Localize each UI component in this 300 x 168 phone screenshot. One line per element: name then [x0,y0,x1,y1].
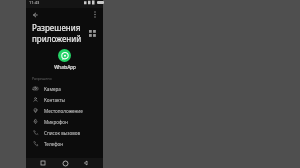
staticText: Список вызовов [44,130,81,136]
staticText: Местоположение [44,108,83,114]
button[interactable]: Recent apps [38,158,48,168]
button[interactable]: Grid view [86,27,98,39]
staticText: 11:43 [29,0,40,5]
staticText: Микрофон [44,119,68,125]
button[interactable]: Местоположение [26,105,103,116]
staticText: Разрешения [32,22,81,33]
staticText: Телефон [44,141,64,147]
button[interactable]: Back [81,158,91,168]
staticText: Разрешено [32,76,52,81]
button[interactable]: Телефон [26,138,103,149]
staticText: Контакты [44,97,66,103]
button[interactable]: Список вызовов [26,127,103,138]
button[interactable]: More options [89,9,100,20]
staticText: приложений [32,33,82,44]
button[interactable]: Контакты [26,94,103,105]
button[interactable]: Back [29,9,40,20]
button[interactable]: Микрофон [26,116,103,127]
button[interactable]: Home [60,158,70,168]
staticText: Камера [44,86,61,92]
button[interactable]: Камера [26,83,103,94]
staticText: WhatsApp [54,64,76,70]
